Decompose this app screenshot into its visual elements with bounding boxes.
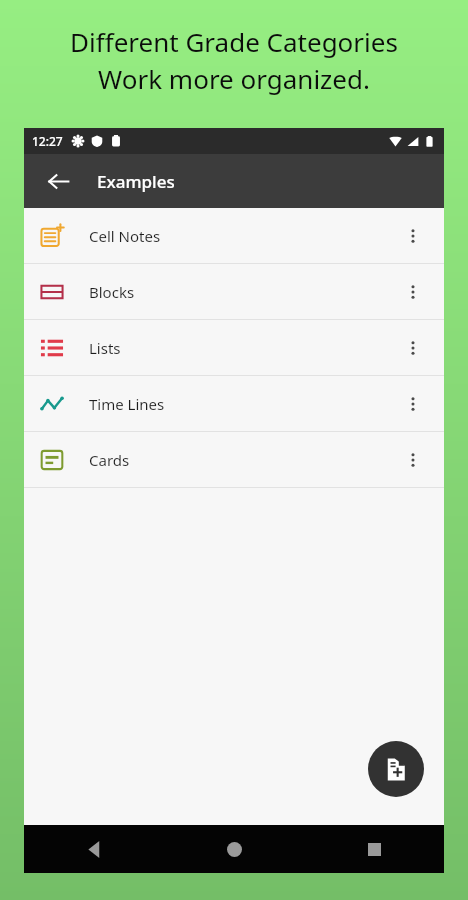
button[interactable]: Home <box>164 825 304 873</box>
button[interactable]: More options <box>391 214 435 258</box>
button[interactable]: More options <box>391 382 435 426</box>
button[interactable]: Cards <box>24 432 444 487</box>
button[interactable]: Back <box>24 825 164 873</box>
staticText: Different Grade Categories <box>70 24 398 59</box>
button[interactable]: Time Lines <box>24 376 444 431</box>
staticText: Cell Notes <box>89 226 161 246</box>
staticText: Examples <box>97 170 175 193</box>
staticText: Cards <box>89 450 130 470</box>
staticText: Work more organized. <box>98 61 370 96</box>
staticText: Lists <box>89 338 121 358</box>
staticText: Time Lines <box>89 394 165 414</box>
button[interactable]: Lists <box>24 320 444 375</box>
button[interactable]: Blocks <box>24 264 444 319</box>
button[interactable]: More options <box>391 438 435 482</box>
button[interactable]: More options <box>391 326 435 370</box>
button[interactable]: New document <box>368 741 424 797</box>
button[interactable]: Cell Notes <box>24 208 444 263</box>
button[interactable]: Back <box>38 161 78 201</box>
button[interactable]: Recents <box>304 825 444 873</box>
button[interactable]: More options <box>391 270 435 314</box>
staticText: Blocks <box>89 282 135 302</box>
staticText: 12:27 <box>32 133 63 149</box>
